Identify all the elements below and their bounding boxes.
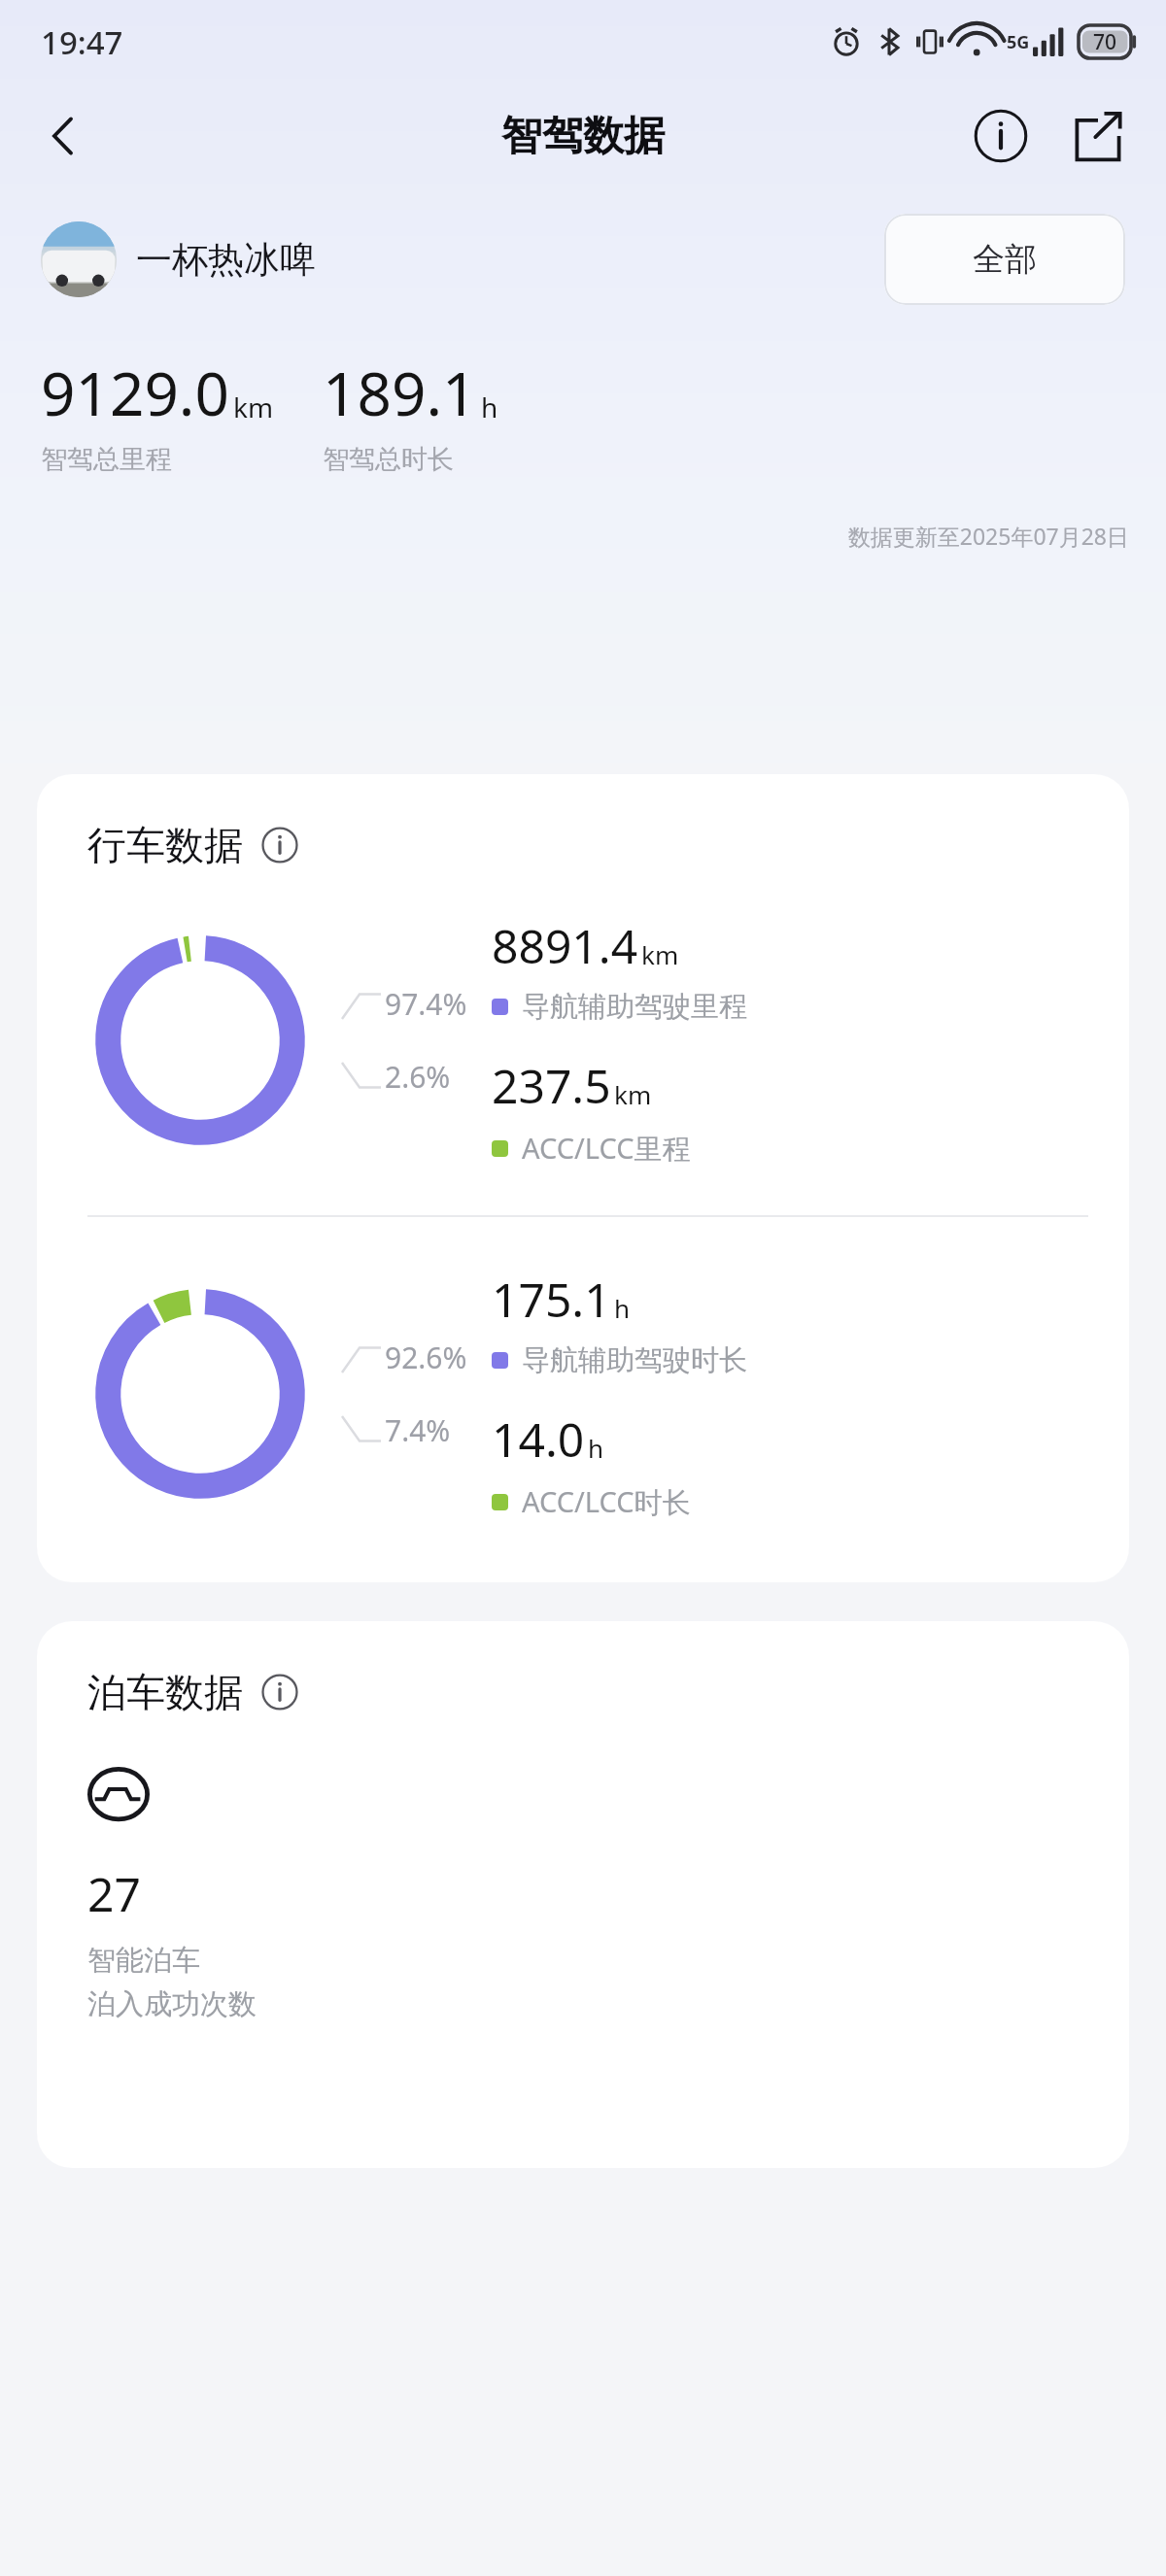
staticText: km bbox=[614, 1077, 652, 1111]
button[interactable]: 全部 bbox=[884, 214, 1125, 305]
staticText: km bbox=[233, 389, 274, 425]
staticText: 2.6% bbox=[385, 1057, 451, 1097]
staticText: 导航辅助驾驶时长 bbox=[522, 1342, 747, 1378]
staticText: 92.6% bbox=[385, 1338, 467, 1377]
staticText: 27 bbox=[87, 1862, 141, 1925]
staticText: ACC/LCC里程 bbox=[522, 1129, 691, 1168]
staticText: 189.1 bbox=[323, 352, 477, 433]
staticText: 8891.4 bbox=[492, 914, 638, 977]
button[interactable]: Info bbox=[960, 95, 1042, 177]
button[interactable]: 行车数据 bbox=[37, 774, 1129, 1582]
staticText: 14.0 bbox=[492, 1407, 585, 1471]
staticText: 19:47 bbox=[41, 20, 123, 64]
staticText: 一杯热冰啤 bbox=[136, 237, 316, 283]
staticText: h bbox=[614, 1291, 631, 1325]
staticText: h bbox=[588, 1431, 604, 1465]
staticText: 泊车数据 bbox=[87, 1668, 243, 1716]
staticText: 5G bbox=[1007, 30, 1030, 54]
staticText: ACC/LCC时长 bbox=[522, 1482, 691, 1521]
staticText: 237.5 bbox=[492, 1054, 611, 1117]
button[interactable]: Share bbox=[1057, 95, 1139, 177]
staticText: 行车数据 bbox=[87, 821, 243, 869]
staticText: 7.4% bbox=[385, 1410, 451, 1450]
staticText: 数据更新至2025年07月28日 bbox=[0, 521, 1129, 551]
staticText: 智驾总时长 bbox=[323, 443, 454, 476]
staticText: 97.4% bbox=[385, 984, 467, 1024]
staticText: 泊入成功次数 bbox=[87, 1986, 257, 2022]
staticText: 智能泊车 bbox=[87, 1943, 200, 1979]
button[interactable]: Back bbox=[23, 95, 105, 177]
staticText: 175.1 bbox=[492, 1268, 611, 1331]
staticText: h bbox=[481, 389, 498, 425]
staticText: 智驾数据 bbox=[501, 111, 665, 162]
staticText: 导航辅助驾驶里程 bbox=[522, 989, 747, 1025]
button[interactable]: 泊车数据 bbox=[37, 1621, 1129, 2168]
button[interactable]: Info bbox=[257, 822, 303, 868]
staticText: 9129.0 bbox=[41, 352, 229, 433]
staticText: 70 bbox=[1093, 28, 1117, 56]
staticText: km bbox=[641, 937, 679, 971]
staticText: 全部 bbox=[973, 239, 1037, 280]
button[interactable]: Info bbox=[257, 1669, 303, 1715]
staticText: 智驾总里程 bbox=[41, 443, 172, 476]
